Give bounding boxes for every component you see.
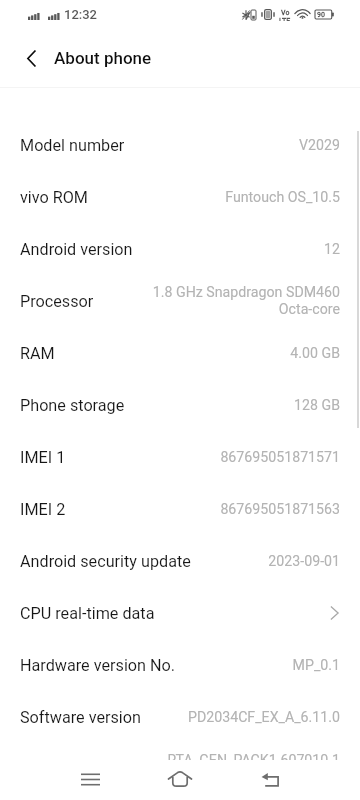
staticText: Hardware version No. (20, 656, 176, 675)
button[interactable]: Software version (0, 691, 360, 743)
staticText: 12:32 (64, 7, 98, 22)
button[interactable]: IMEI 1 (0, 431, 360, 483)
button[interactable]: Processor (0, 275, 360, 327)
staticText: 90 (317, 11, 325, 19)
staticText: Baseband version (20, 760, 149, 779)
button[interactable]: Back (240, 760, 300, 800)
staticText: Processor (20, 292, 94, 311)
staticText: 2023-09-01 (268, 553, 340, 570)
button[interactable]: Android version (0, 223, 360, 275)
staticText: PD2034CF_EX_A_6.11.0 (187, 709, 340, 726)
button[interactable]: IMEI 2 (0, 483, 360, 535)
staticText: 1.8 GHz Snapdragon SDM460 Octa-core (152, 284, 340, 318)
staticText: Funtouch OS_10.5 (225, 189, 340, 206)
staticText: Android version (20, 240, 133, 259)
staticText: Vo (281, 9, 290, 17)
staticText: 867695051871563 (220, 501, 340, 518)
staticText: Model number (20, 136, 125, 155)
button[interactable]: CPU real-time data (0, 587, 360, 639)
staticText: CPU real-time data (20, 604, 155, 623)
staticText: vivo ROM (20, 188, 88, 207)
staticText: RTA_GEN_PACK1.607010.1 BASE (167, 752, 340, 786)
staticText: About phone (54, 48, 152, 68)
staticText: 4.00 GB (290, 345, 340, 362)
button[interactable]: Baseband version (0, 743, 360, 795)
staticText: RAM (20, 344, 55, 363)
staticText: IMEI 1 (20, 448, 66, 467)
button[interactable]: Recent apps (60, 760, 120, 800)
button[interactable]: Phone storage (0, 379, 360, 431)
staticText: MP_0.1 (292, 657, 340, 674)
staticText: 12 (324, 241, 340, 258)
staticText: Android security update (20, 552, 191, 571)
staticText: 867695051871571 (220, 449, 340, 466)
staticText: Phone storage (20, 396, 125, 415)
button[interactable]: vivo ROM (0, 171, 360, 223)
button[interactable]: Home (150, 760, 210, 800)
staticText: IMEI 2 (20, 500, 66, 519)
button[interactable]: RAM (0, 327, 360, 379)
staticText: V2029 (299, 137, 340, 154)
button[interactable]: Back (14, 41, 48, 75)
staticText: Software version (20, 708, 141, 727)
button[interactable]: Android security update (0, 535, 360, 587)
staticText: LTE (279, 17, 291, 21)
button[interactable]: Model number (0, 119, 360, 171)
staticText: 128 GB (294, 397, 340, 414)
button[interactable]: Hardware version No. (0, 639, 360, 691)
